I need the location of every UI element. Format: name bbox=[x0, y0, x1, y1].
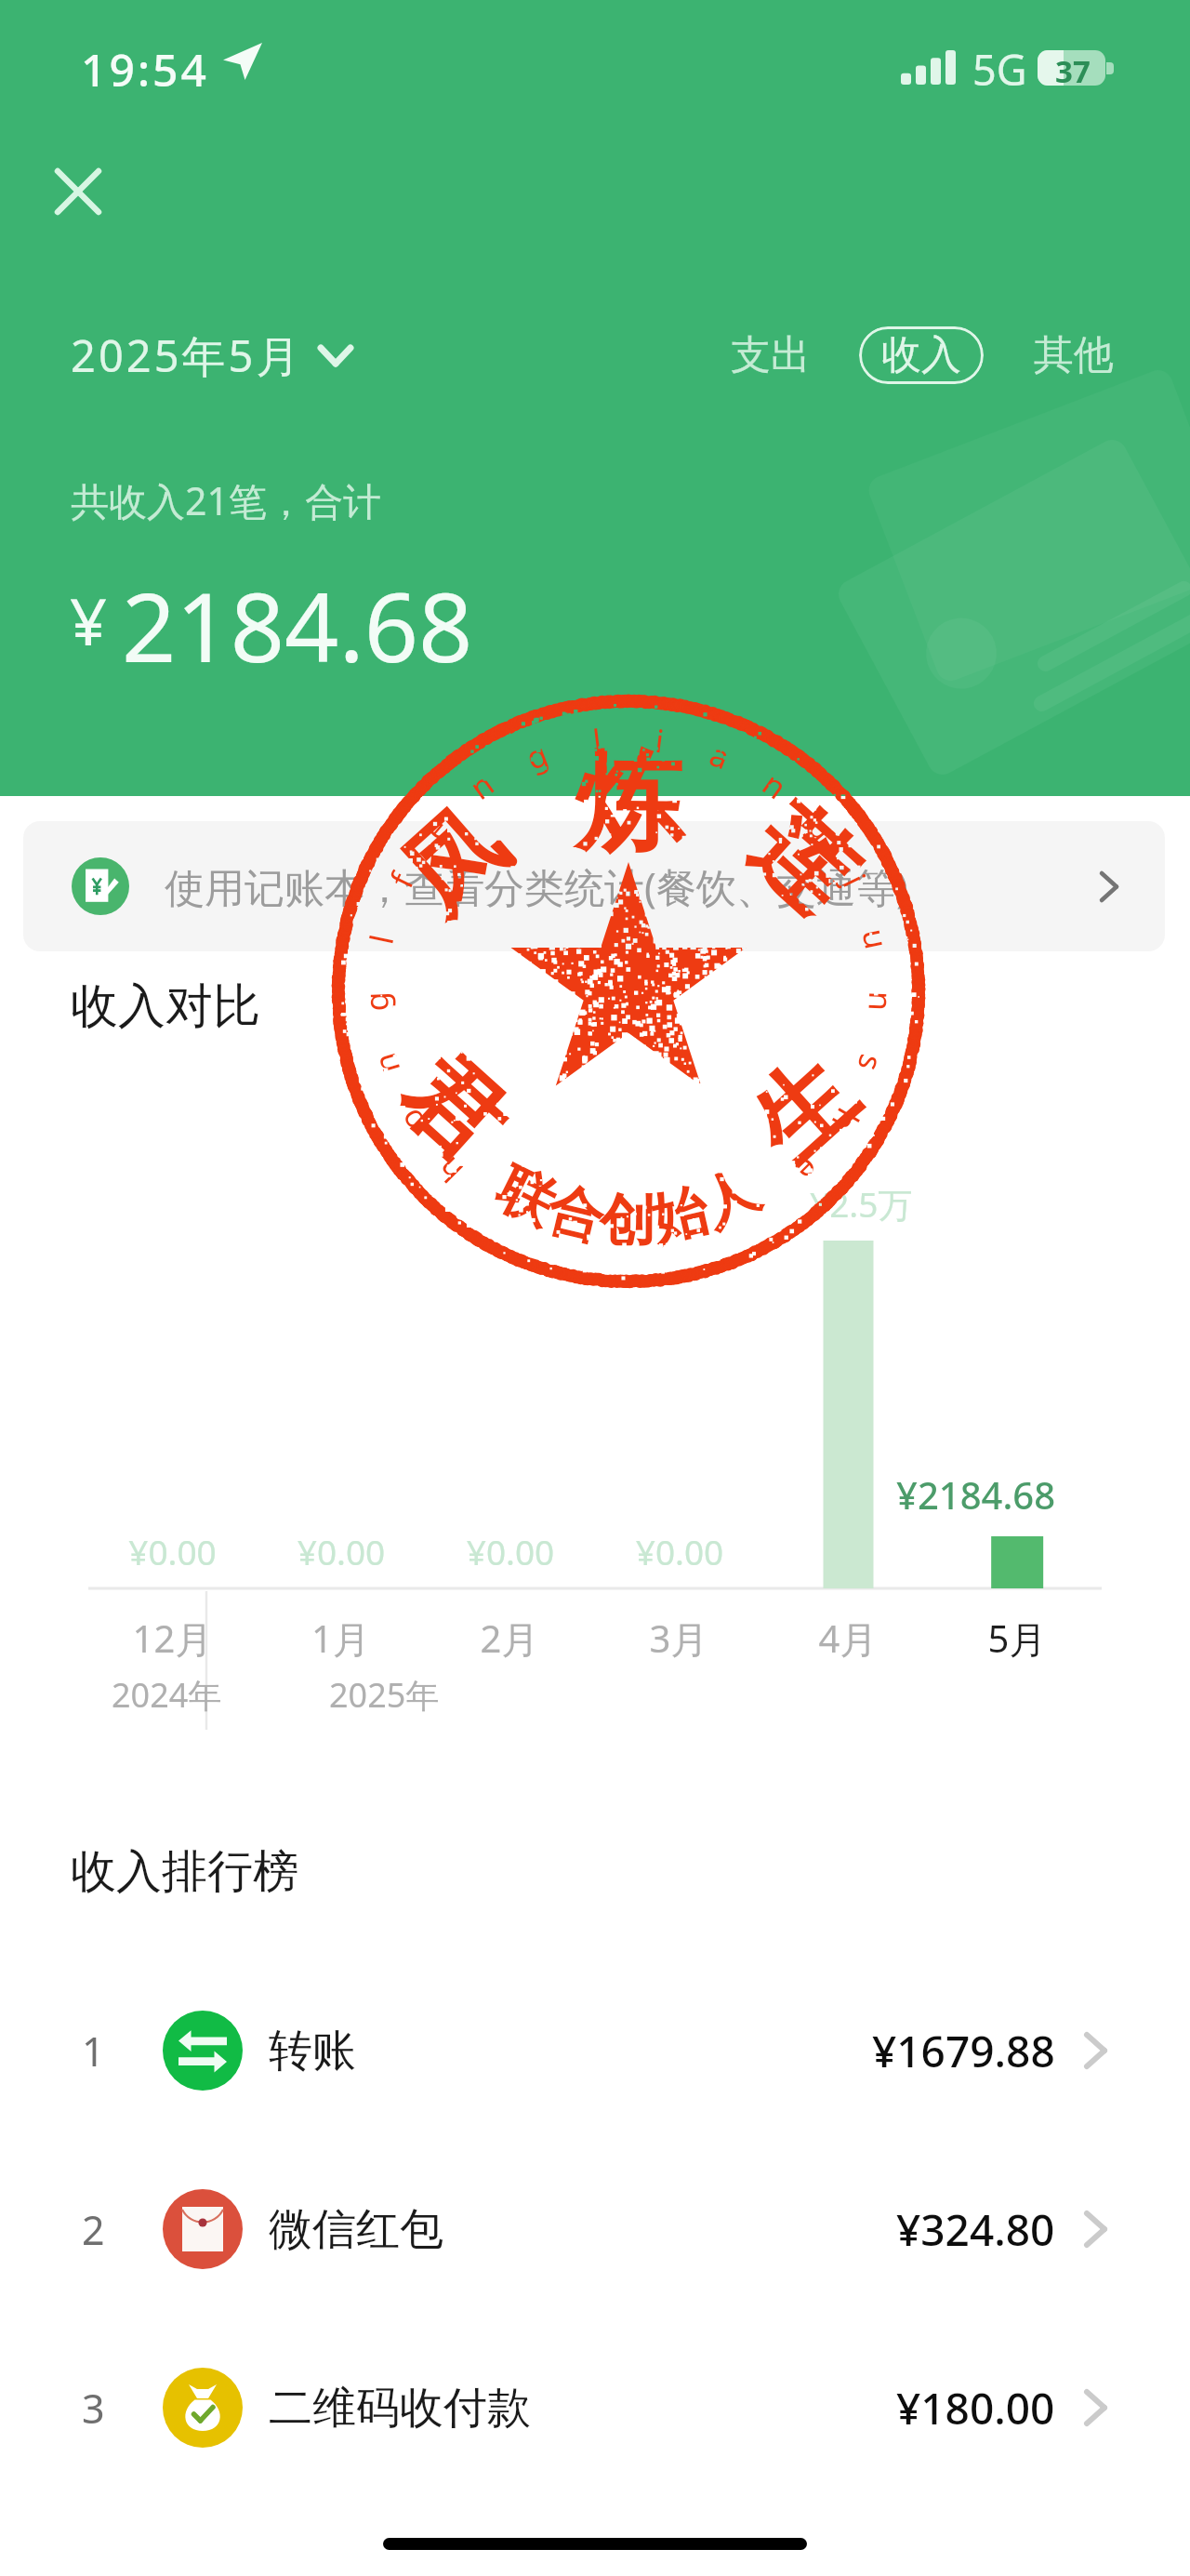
button[interactable]: 3 bbox=[0, 2318, 1190, 2497]
staticText: 1月 bbox=[257, 1613, 425, 1664]
staticText: ¥1679.88 bbox=[872, 2022, 1055, 2080]
staticText: 微信红包 bbox=[269, 2202, 443, 2257]
staticText: ¥2.5万 bbox=[810, 1180, 913, 1228]
staticText: 12月 bbox=[88, 1613, 257, 1664]
button[interactable]: 1 bbox=[0, 1961, 1190, 2140]
button[interactable]: 收入 bbox=[859, 326, 984, 384]
staticText: ¥ bbox=[70, 576, 108, 664]
staticText: 3 bbox=[82, 2381, 105, 2436]
staticText: 5G bbox=[972, 41, 1027, 98]
staticText: 2月 bbox=[425, 1613, 594, 1664]
staticText: ¥180.00 bbox=[896, 2379, 1055, 2437]
staticText: 使用记账本，查看分类统计(餐饮、交通等) bbox=[165, 859, 908, 914]
staticText: 3月 bbox=[594, 1613, 763, 1664]
staticText: 2 bbox=[82, 2202, 105, 2257]
staticText: ¥0.00 bbox=[88, 1528, 257, 1574]
staticText: ¥324.80 bbox=[896, 2200, 1055, 2259]
staticText: 收入 bbox=[881, 330, 961, 380]
staticText: ¥0.00 bbox=[257, 1528, 426, 1574]
staticText: 转账 bbox=[269, 2024, 356, 2078]
staticText: 1 bbox=[82, 2024, 105, 2078]
button[interactable]: 其他 bbox=[1011, 319, 1136, 392]
staticText: 19:54 bbox=[81, 39, 209, 100]
button[interactable]: 使用记账本，查看分类统计(餐饮、交通等) bbox=[23, 821, 1165, 951]
staticText: 2184.68 bbox=[122, 561, 473, 690]
staticText: 2024年 bbox=[112, 1672, 222, 1718]
staticText: 二维码收付款 bbox=[269, 2381, 531, 2436]
staticText: 收入排行榜 bbox=[71, 1843, 298, 1901]
staticText: ¥0.00 bbox=[426, 1528, 595, 1574]
staticText: 37 bbox=[1055, 50, 1091, 86]
staticText: 共收入21笔，合计 bbox=[71, 474, 381, 526]
button[interactable]: Close bbox=[32, 145, 125, 238]
staticText: 4月 bbox=[763, 1613, 932, 1664]
staticText: 2025年5月 bbox=[71, 325, 303, 385]
button[interactable]: 2 bbox=[0, 2140, 1190, 2318]
staticText: 收入对比 bbox=[71, 976, 260, 1036]
staticText: 2025年 bbox=[329, 1672, 440, 1718]
staticText: ¥0.00 bbox=[595, 1528, 764, 1574]
button[interactable]: 支出 bbox=[708, 319, 833, 392]
staticText: 5月 bbox=[932, 1613, 1102, 1664]
button[interactable]: 2025年5月 bbox=[56, 316, 366, 394]
staticText: ¥2184.68 bbox=[896, 1469, 1056, 1520]
